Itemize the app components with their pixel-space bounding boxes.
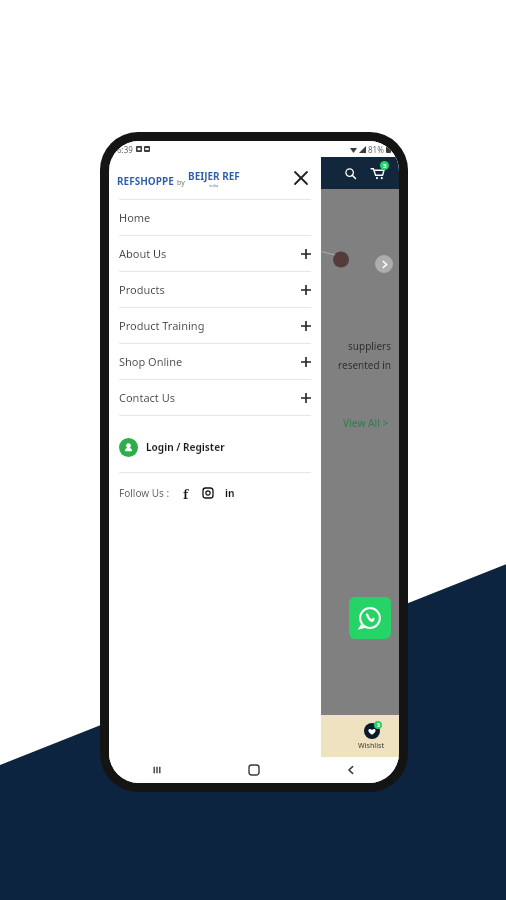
staticText: india xyxy=(209,183,219,188)
button[interactable]: View All > xyxy=(343,416,389,430)
button[interactable]: About Us xyxy=(109,236,321,271)
button[interactable]: Chat on WhatsApp xyxy=(349,597,391,639)
button[interactable]: Search xyxy=(339,162,361,184)
staticText: 6:39 xyxy=(117,144,133,155)
button[interactable]: Facebook xyxy=(178,485,194,501)
staticText: Products xyxy=(119,282,165,297)
staticText: Login / Register xyxy=(146,440,225,454)
staticText: 3 xyxy=(377,722,380,729)
button[interactable]: 3 xyxy=(358,721,385,751)
button[interactable]: back xyxy=(302,757,399,783)
button[interactable]: Product Training xyxy=(109,308,321,343)
staticText: Wishlist xyxy=(358,741,385,751)
button[interactable]: Contact Us xyxy=(109,380,321,415)
button[interactable]: recents xyxy=(109,757,205,783)
button[interactable]: REFSHOPPE xyxy=(117,169,240,188)
button[interactable]: Instagram xyxy=(200,485,216,501)
button[interactable]: Shop Online xyxy=(109,344,321,379)
staticText: 81% xyxy=(368,144,384,155)
button[interactable]: Login / Register xyxy=(119,430,321,464)
staticText: in xyxy=(225,486,235,500)
staticText: by xyxy=(177,178,185,188)
staticText: Home xyxy=(119,210,151,225)
staticText: Shop Online xyxy=(119,354,183,369)
staticText: BEIJER REF xyxy=(188,169,240,183)
staticText: Product Training xyxy=(119,318,205,333)
staticText: Follow Us : xyxy=(119,486,170,500)
staticText: f xyxy=(183,485,189,501)
button[interactable]: Close menu xyxy=(289,166,313,190)
staticText: suppliers xyxy=(117,339,391,353)
button[interactable]: home xyxy=(205,757,302,783)
staticText: View All > xyxy=(343,416,389,430)
button[interactable]: LinkedIn xyxy=(222,485,238,501)
staticText: About Us xyxy=(119,246,167,261)
button[interactable]: Products xyxy=(109,272,321,307)
staticText: Contact Us xyxy=(119,390,175,405)
button[interactable]: Next xyxy=(375,255,393,273)
staticText: 3 xyxy=(383,162,387,170)
button[interactable]: Cart xyxy=(365,161,389,185)
staticText: resented in xyxy=(117,358,391,372)
staticText: REFSHOPPE xyxy=(117,174,174,188)
button[interactable]: Home xyxy=(109,200,321,235)
